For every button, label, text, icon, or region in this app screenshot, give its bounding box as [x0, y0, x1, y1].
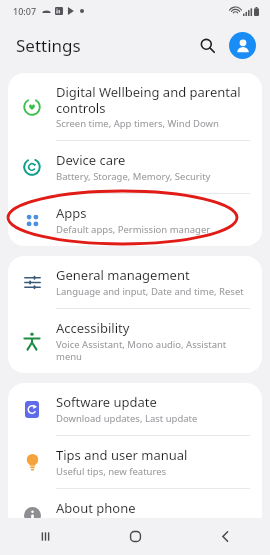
staticText: Tips and user manual	[56, 446, 188, 464]
staticText: Apps	[56, 204, 87, 222]
button[interactable]: General management	[8, 256, 262, 309]
button[interactable]: Digital Wellbeing and parental controls	[8, 73, 262, 141]
staticText: Default apps, Permission manager	[56, 223, 211, 236]
staticText: About phone	[56, 499, 136, 517]
staticText: Device care	[56, 151, 126, 169]
button[interactable]: Back	[180, 518, 270, 555]
button[interactable]: Accessibility	[8, 309, 262, 373]
button[interactable]: Apps	[8, 194, 262, 246]
staticText: Voice Assistant, Mono audio, Assistant m…	[56, 338, 248, 363]
button[interactable]: Account	[229, 32, 256, 59]
button[interactable]: Home	[90, 518, 180, 555]
staticText: Screen time, App timers, Wind Down	[56, 117, 219, 130]
button[interactable]: Tips and user manual	[8, 436, 262, 489]
staticText: Useful tips, new features	[56, 465, 167, 478]
staticText: Download updates, Last update	[56, 412, 198, 425]
button[interactable]: About phone	[8, 489, 262, 541]
staticText: Battery, Storage, Memory, Security	[56, 170, 211, 183]
staticText: Digital Wellbeing and parental controls	[56, 83, 248, 116]
staticText: 10:07	[13, 5, 37, 17]
button[interactable]: Search	[193, 31, 221, 59]
staticText: Language and input, Date and time, Reset	[56, 285, 244, 298]
staticText: General management	[56, 266, 190, 284]
staticText: Settings	[16, 34, 81, 57]
staticText: Accessibility	[56, 319, 130, 337]
staticText: Software update	[56, 393, 157, 411]
button[interactable]: Recent apps	[0, 518, 90, 555]
button[interactable]: Software update	[8, 383, 262, 436]
button[interactable]: Device care	[8, 141, 262, 194]
